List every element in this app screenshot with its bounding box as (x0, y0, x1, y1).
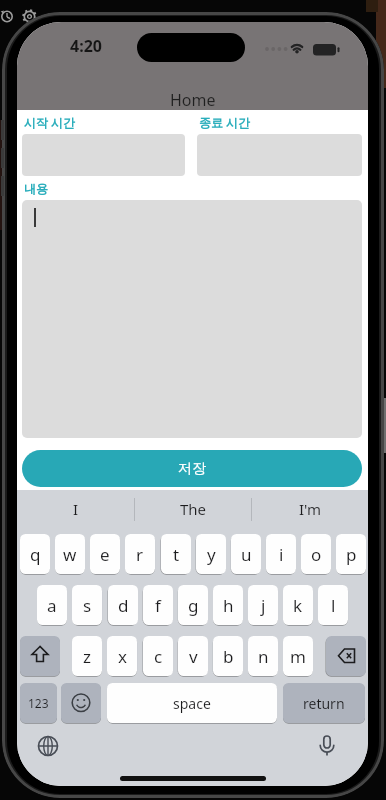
staticText: Home (170, 89, 216, 110)
staticText: b (223, 645, 234, 668)
button[interactable]: I (17, 490, 134, 528)
staticText: z (83, 645, 91, 668)
button[interactable]: c (143, 636, 173, 676)
staticText: 내용 (24, 181, 48, 196)
button[interactable]: g (178, 585, 208, 625)
staticText: j (261, 594, 266, 617)
staticText: s (83, 594, 92, 617)
button[interactable]: The (135, 490, 251, 528)
button[interactable]: m (283, 636, 313, 676)
staticText: f (155, 594, 161, 617)
button[interactable]: r (125, 534, 155, 574)
button[interactable]: space (107, 683, 277, 723)
button[interactable] (20, 636, 60, 676)
button[interactable]: f (143, 585, 173, 625)
button[interactable]: o (301, 534, 331, 574)
button[interactable]: h (213, 585, 243, 625)
button[interactable]: s (72, 585, 102, 625)
button[interactable]: j (248, 585, 278, 625)
button[interactable]: return (283, 683, 365, 723)
button[interactable]: I'm (252, 490, 368, 528)
button[interactable]: 123 (20, 683, 57, 723)
staticText: m (290, 645, 306, 668)
staticText: 종료 시간 (199, 114, 251, 130)
button[interactable]: p (336, 534, 366, 574)
staticText: v (189, 645, 198, 668)
button[interactable]: z (72, 636, 102, 676)
button[interactable]: x (107, 636, 137, 676)
button[interactable]: n (248, 636, 278, 676)
staticText: o (311, 543, 322, 566)
staticText: l (331, 594, 336, 617)
staticText: h (223, 594, 234, 617)
button[interactable]: w (55, 534, 85, 574)
staticText: p (346, 543, 357, 566)
button[interactable]: u (231, 534, 261, 574)
button[interactable]: k (283, 585, 313, 625)
button[interactable]: y (196, 534, 226, 574)
staticText: d (118, 594, 129, 617)
button[interactable] (326, 636, 366, 676)
staticText: 시작 시간 (24, 114, 76, 130)
staticText: t (173, 543, 180, 566)
button[interactable]: q (20, 534, 50, 574)
staticText: c (154, 645, 163, 668)
staticText: e (100, 543, 110, 566)
staticText: x (118, 645, 127, 668)
staticText: return (303, 694, 345, 713)
staticText: space (173, 694, 211, 713)
button[interactable] (22, 200, 362, 438)
button[interactable]: a (37, 585, 67, 625)
button[interactable]: e (90, 534, 120, 574)
staticText: The (180, 499, 207, 519)
button[interactable]: v (178, 636, 208, 676)
staticText: w (63, 543, 77, 566)
staticText: a (47, 594, 57, 617)
staticText: i (279, 543, 284, 566)
staticText: k (293, 594, 303, 617)
staticText: g (188, 594, 199, 617)
button[interactable]: l (318, 585, 348, 625)
staticText: I'm (299, 499, 322, 519)
button[interactable]: 저장 (22, 450, 362, 487)
button[interactable]: d (108, 585, 138, 625)
button[interactable] (61, 683, 101, 723)
staticText: n (258, 645, 269, 668)
staticText: q (30, 543, 41, 566)
button[interactable]: i (266, 534, 296, 574)
staticText: 4:20 (70, 35, 102, 55)
staticText: 저장 (178, 460, 206, 478)
staticText: y (207, 543, 216, 566)
button[interactable]: b (213, 636, 243, 676)
staticText: 123 (28, 695, 49, 711)
staticText: r (136, 543, 144, 566)
button[interactable]: t (161, 534, 191, 574)
staticText: I (73, 499, 79, 519)
staticText: u (241, 543, 252, 566)
